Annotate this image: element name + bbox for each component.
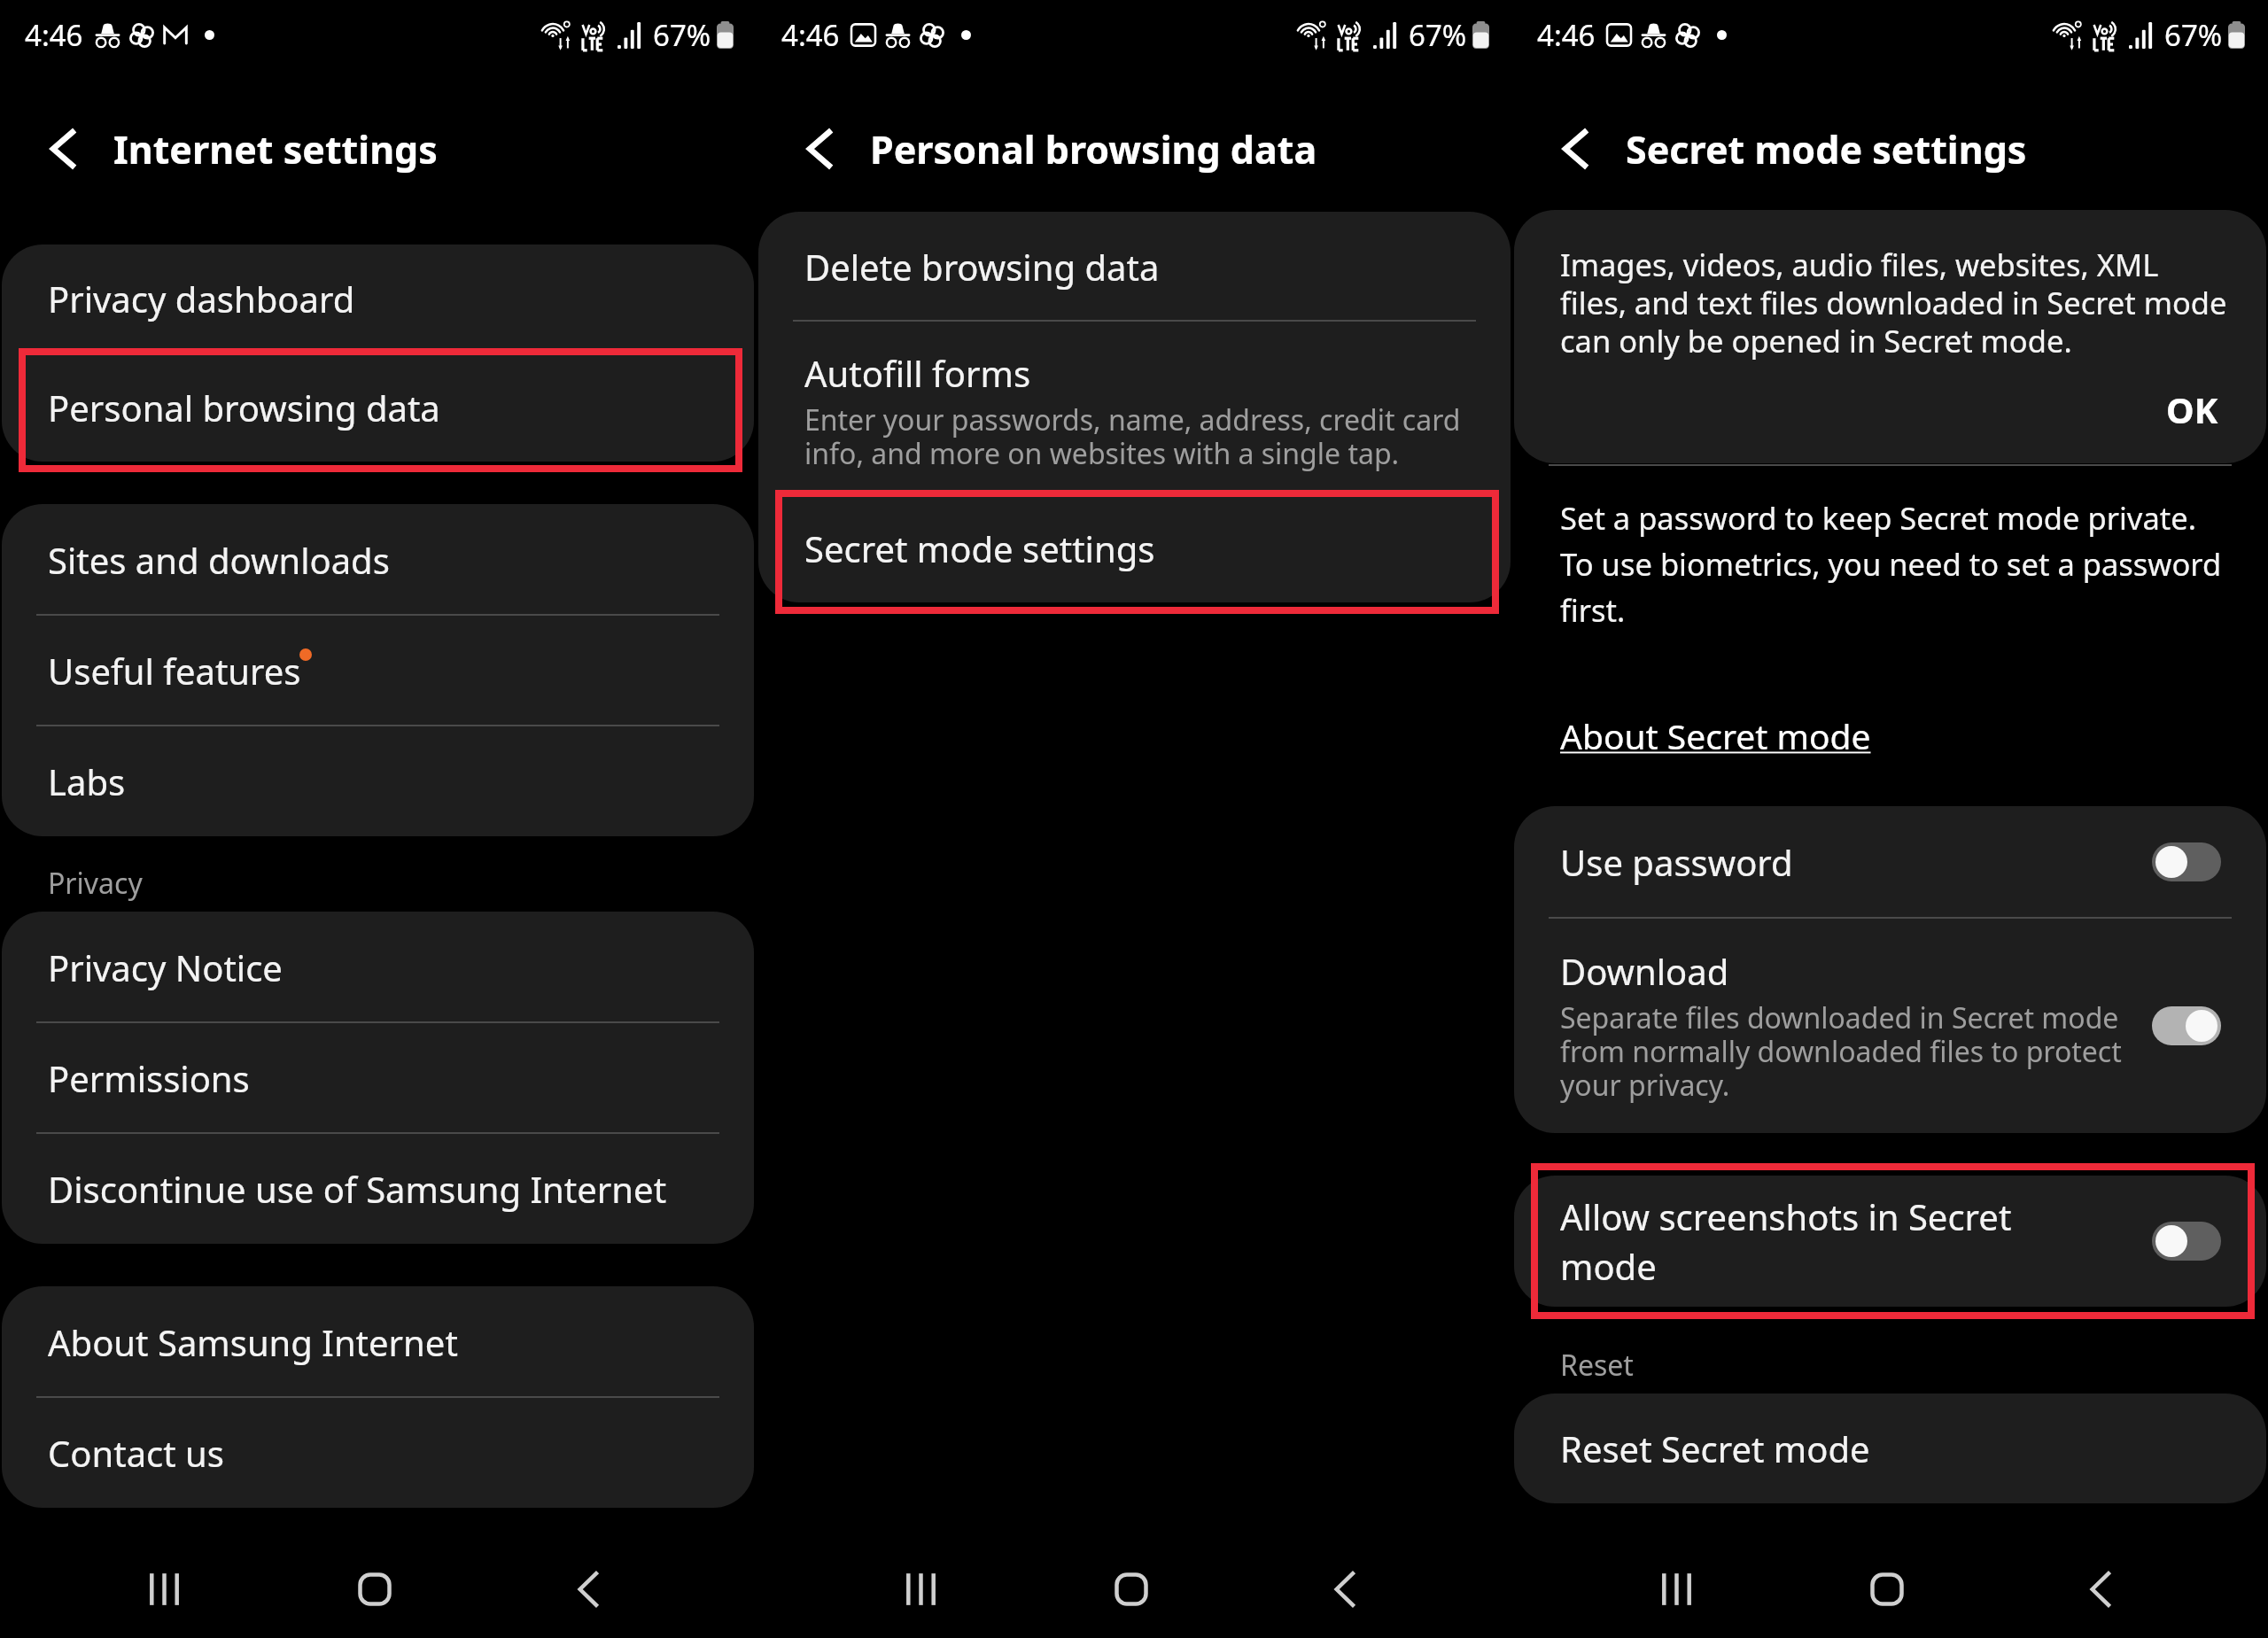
staticText: Allow screenshots in Secret mode xyxy=(1560,1192,2056,1291)
button[interactable]: Home xyxy=(1060,1541,1202,1638)
button[interactable]: Privacy Notice xyxy=(2,912,754,1022)
button[interactable]: Secret mode settings xyxy=(758,494,1511,602)
staticText: Labs xyxy=(48,757,126,805)
staticText: Personal browsing data xyxy=(48,384,440,431)
button[interactable]: Back xyxy=(517,1541,658,1638)
button[interactable]: Useful features xyxy=(2,615,754,726)
staticText: Reset Secret mode xyxy=(1560,1425,1870,1472)
button[interactable]: Personal browsing data xyxy=(2,353,754,462)
button[interactable]: Switch off xyxy=(2152,842,2221,881)
staticText: About Samsung Internet xyxy=(48,1318,458,1366)
staticText: OK xyxy=(2166,385,2218,433)
button[interactable]: Permissions xyxy=(2,1022,754,1133)
button[interactable]: Delete browsing data xyxy=(758,212,1511,321)
staticText: Privacy xyxy=(48,864,143,903)
button[interactable]: About Samsung Internet xyxy=(2,1286,754,1397)
staticText: Enter your passwords, name, address, cre… xyxy=(804,400,1473,472)
staticText: Contact us xyxy=(48,1429,224,1477)
button[interactable]: Back xyxy=(2029,1541,2171,1638)
button[interactable]: Navigate up xyxy=(785,115,852,182)
staticText: Permissions xyxy=(48,1054,250,1102)
button[interactable]: Home xyxy=(304,1541,446,1638)
button[interactable]: Download xyxy=(1514,918,2266,1133)
button[interactable]: Contact us xyxy=(2,1397,754,1508)
staticText: Discontinue use of Samsung Internet xyxy=(48,1165,667,1213)
staticText: Autofill forms xyxy=(804,349,1031,397)
staticText: Secret mode settings xyxy=(1626,123,2027,175)
button[interactable]: Back xyxy=(1273,1541,1415,1638)
button[interactable]: Sites and downloads xyxy=(2,504,754,615)
staticText: Privacy dashboard xyxy=(48,275,355,322)
staticText: Sites and downloads xyxy=(48,536,390,584)
staticText: Secret mode settings xyxy=(804,524,1155,572)
staticText: Images, videos, audio files, websites, X… xyxy=(1560,244,2229,361)
staticText: 4:46 xyxy=(781,15,840,55)
button[interactable]: Privacy dashboard xyxy=(2,245,754,353)
staticText: 67% xyxy=(653,15,711,55)
button[interactable]: Reset Secret mode xyxy=(1514,1393,2266,1503)
button[interactable]: Switch off xyxy=(2152,1222,2221,1261)
button[interactable]: Use password xyxy=(1514,806,2266,918)
staticText: Reset xyxy=(1560,1346,1634,1385)
button[interactable]: Allow screenshots in Secret mode xyxy=(1514,1176,2266,1307)
staticText: Internet settings xyxy=(113,123,438,175)
staticText: Useful features xyxy=(48,647,301,695)
staticText: Personal browsing data xyxy=(870,123,1317,175)
staticText: About Secret mode xyxy=(1560,712,1871,759)
staticText: 67% xyxy=(1409,15,1467,55)
button[interactable]: About Secret mode xyxy=(1560,712,1871,759)
button[interactable]: Recent apps xyxy=(1605,1541,1747,1638)
button[interactable]: Recent apps xyxy=(850,1541,991,1638)
staticText: Delete browsing data xyxy=(804,243,1160,291)
staticText: Download xyxy=(1560,947,1729,995)
staticText: Privacy Notice xyxy=(48,943,283,991)
button[interactable]: Labs xyxy=(2,726,754,836)
button[interactable]: Home xyxy=(1816,1541,1958,1638)
staticText: 4:46 xyxy=(25,15,83,55)
button[interactable]: Navigate up xyxy=(28,115,96,182)
staticText: Separate files downloaded in Secret mode… xyxy=(1560,998,2127,1104)
button[interactable]: Discontinue use of Samsung Internet xyxy=(2,1133,754,1244)
button[interactable]: Switch on xyxy=(2152,1006,2221,1045)
staticText: Use password xyxy=(1560,838,1793,886)
staticText: 67% xyxy=(2164,15,2223,55)
staticText: 4:46 xyxy=(1537,15,1596,55)
button[interactable]: Recent apps xyxy=(93,1541,235,1638)
button[interactable]: Navigate up xyxy=(1541,115,1608,182)
staticText: Set a password to keep Secret mode priva… xyxy=(1560,497,2229,631)
button[interactable]: OK xyxy=(2010,374,2218,445)
